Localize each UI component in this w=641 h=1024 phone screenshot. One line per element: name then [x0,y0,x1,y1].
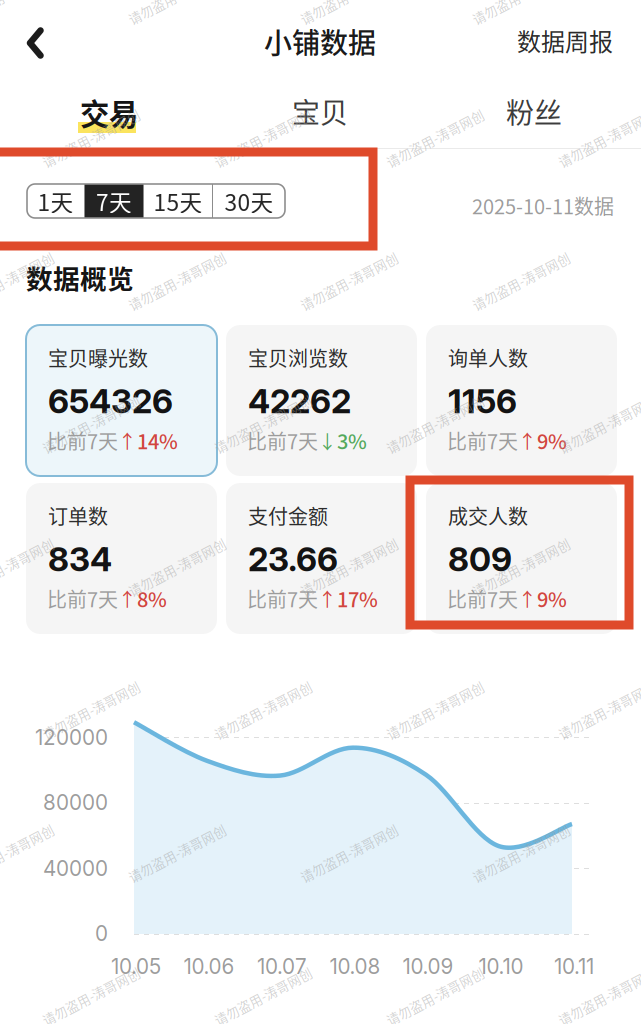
staticText: 宝贝曝光数 [48,343,148,372]
staticText: 42262 [248,381,351,421]
staticText: 1天 [37,185,73,217]
staticText: 请勿盗用-涛哥网创 [123,558,231,576]
staticText: 比前7天 [247,584,318,613]
staticText: 请勿盗用-涛哥网创 [37,415,145,433]
staticText: 23.66 [248,539,338,579]
staticText: 120000 [35,725,108,750]
button[interactable]: 1天 [27,184,84,218]
staticText: 809 [448,539,512,579]
staticText: 2025-10-11数据 [472,191,614,220]
staticText: 粉丝 [506,91,562,131]
staticText: 3% [337,426,367,455]
button[interactable]: 询单人数 [426,325,617,476]
staticText: 请勿盗用-涛哥网创 [295,0,403,4]
staticText: 比前7天 [247,426,318,455]
staticText: 请勿盗用-涛哥网创 [381,129,489,147]
staticText: 请勿盗用-涛哥网创 [467,558,575,576]
staticText: 请勿盗用-涛哥网创 [553,987,641,1005]
button[interactable]: 成交人数 [426,483,617,634]
staticText: 9% [537,584,567,613]
staticText: 10.11 [554,954,594,979]
staticText: 交易 [80,91,138,133]
staticText: 1156 [448,381,517,421]
staticText: 支付金额 [248,501,328,530]
staticText: 10.07 [257,954,307,979]
staticText: 请勿盗用-涛哥网创 [295,272,403,290]
staticText: 请勿盗用-涛哥网创 [553,415,641,433]
staticText: 请勿盗用-涛哥网创 [295,558,403,576]
staticText: 请勿盗用-涛哥网创 [209,987,317,1005]
staticText: 请勿盗用-涛哥网创 [123,0,231,4]
button[interactable]: 15天 [144,184,212,218]
staticText: ↑ [518,427,537,454]
staticText: ↑ [118,585,137,612]
button[interactable]: 宝贝曝光数 [26,325,217,476]
staticText: 请勿盗用-涛哥网创 [0,558,59,576]
staticText: 30天 [224,185,273,217]
staticText: 请勿盗用-涛哥网创 [0,0,59,4]
staticText: 请勿盗用-涛哥网创 [381,987,489,1005]
staticText: 请勿盗用-涛哥网创 [0,272,59,290]
staticText: 10.09 [402,954,453,979]
staticText: 比前7天 [47,584,118,613]
staticText: 询单人数 [448,343,528,372]
staticText: 请勿盗用-涛哥网创 [467,272,575,290]
staticText: 小铺数据 [264,21,376,61]
staticText: 宝贝 [292,91,348,131]
staticText: 订单数 [48,501,108,530]
staticText: 0 [95,921,108,946]
button[interactable]: 粉丝 [479,91,589,133]
button[interactable]: 订单数 [26,483,217,634]
staticText: 请勿盗用-涛哥网创 [123,844,231,862]
staticText: ↑ [118,427,137,454]
staticText: 17% [337,584,378,613]
button[interactable]: 30天 [213,184,285,218]
button[interactable]: 宝贝 [265,91,375,133]
staticText: 成交人数 [448,501,528,530]
staticText: 834 [48,539,112,579]
staticText: 请勿盗用-涛哥网创 [209,701,317,719]
staticText: 请勿盗用-涛哥网创 [37,701,145,719]
staticText: 请勿盗用-涛哥网创 [0,844,59,862]
button[interactable]: 7天 [85,184,143,218]
staticText: 请勿盗用-涛哥网创 [553,701,641,719]
staticText: 10.06 [183,954,234,979]
staticText: 14% [137,426,178,455]
staticText: 7天 [96,185,132,217]
button[interactable]: 支付金额 [226,483,417,634]
staticText: ↑ [318,585,337,612]
button[interactable]: 数据周报 [517,23,613,58]
staticText: 请勿盗用-涛哥网创 [209,415,317,433]
staticText: 请勿盗用-涛哥网创 [209,129,317,147]
staticText: 8% [137,584,167,613]
staticText: 654326 [48,381,173,421]
staticText: 请勿盗用-涛哥网创 [123,272,231,290]
staticText: 10.08 [329,954,380,979]
staticText: 数据周报 [517,23,613,58]
staticText: 10.05 [111,954,161,979]
staticText: 比前7天 [447,426,518,455]
button[interactable]: 返回 [26,27,45,59]
staticText: 15天 [153,185,202,217]
staticText: 请勿盗用-涛哥网创 [37,129,145,147]
staticText: 80000 [43,790,108,815]
staticText: ↓ [318,427,337,454]
staticText: 宝贝浏览数 [248,343,348,372]
staticText: 请勿盗用-涛哥网创 [467,844,575,862]
staticText: 请勿盗用-涛哥网创 [381,415,489,433]
staticText: 数据概览 [26,258,134,297]
staticText: 40000 [43,856,108,881]
button[interactable]: 宝贝浏览数 [226,325,417,476]
staticText: 请勿盗用-涛哥网创 [553,129,641,147]
staticText: 请勿盗用-涛哥网创 [467,0,575,4]
staticText: 9% [537,426,567,455]
staticText: 10.10 [478,954,523,979]
staticText: 比前7天 [47,426,118,455]
staticText: 请勿盗用-涛哥网创 [295,844,403,862]
staticText: 比前7天 [447,584,518,613]
button[interactable]: 交易 [78,91,136,133]
